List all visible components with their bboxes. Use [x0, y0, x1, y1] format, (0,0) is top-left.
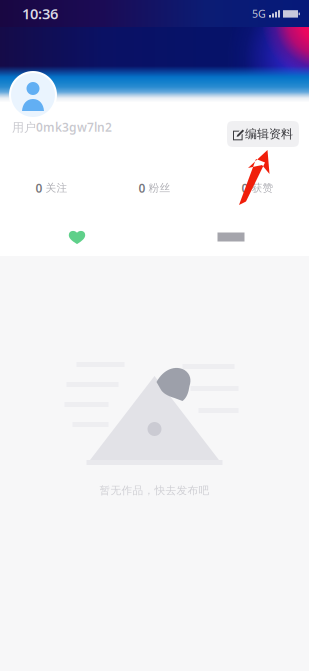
- staticText: 暂无作品，快去发布吧: [99, 484, 209, 497]
- staticText: 粉丝: [148, 181, 170, 194]
- button[interactable]: 喜欢: [0, 224, 154, 250]
- button[interactable]: 0: [206, 180, 309, 196]
- staticText: 获赞: [251, 181, 273, 194]
- button[interactable]: 编辑资料: [227, 121, 299, 147]
- staticText: 10:36: [22, 4, 58, 23]
- staticText: 5G: [252, 6, 266, 21]
- staticText: 0: [241, 180, 248, 196]
- staticText: 0: [138, 180, 145, 196]
- button[interactable]: 0: [103, 180, 206, 196]
- staticText: 关注: [45, 181, 67, 194]
- button[interactable]: 更多: [154, 224, 308, 250]
- staticText: 用户0mk3gw7ln2: [12, 119, 112, 135]
- staticText: 0: [35, 180, 42, 196]
- staticText: 编辑资料: [245, 127, 293, 141]
- button[interactable]: 0: [0, 180, 103, 196]
